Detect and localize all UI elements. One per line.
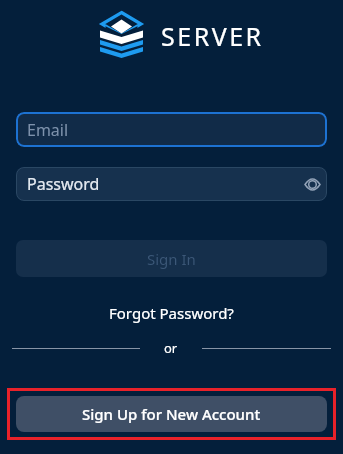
staticText: Forgot Password? [109,303,234,323]
button[interactable]: Password [16,167,327,201]
button[interactable]: Forgot Password? [109,303,234,323]
button[interactable]: Email [16,112,327,147]
staticText: Sign Up for New Account [82,404,261,424]
staticText: Password [27,173,100,195]
staticText: SERVER [161,19,264,53]
staticText: or [164,339,178,357]
button[interactable]: Sign In [16,240,327,277]
button[interactable]: Sign Up for New Account [16,396,327,432]
staticText: Sign In [147,249,196,269]
staticText: Email [27,119,69,141]
